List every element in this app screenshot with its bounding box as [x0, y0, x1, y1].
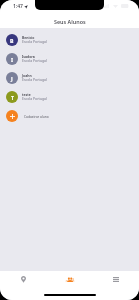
staticText: Joahn	[22, 73, 32, 78]
staticText: Escola Portugal	[22, 39, 47, 44]
staticText: T	[11, 94, 14, 101]
staticText: teste	[22, 92, 31, 97]
staticText: B	[10, 37, 14, 44]
button[interactable]: J	[0, 68, 139, 87]
staticText: J	[11, 75, 13, 82]
staticText: Escola Portugal	[22, 58, 47, 63]
button[interactable]: I	[0, 49, 139, 68]
button[interactable]: Alunos	[47, 271, 93, 288]
staticText: Isadora	[22, 54, 35, 59]
staticText: 1:47	[13, 3, 23, 10]
button[interactable]: Locais	[0, 271, 47, 288]
button[interactable]: B	[0, 30, 139, 49]
staticText: Seus Alunos	[54, 18, 86, 25]
staticText: I	[11, 56, 14, 63]
staticText: Benicio	[22, 35, 35, 40]
staticText: Cadastrar aluno	[24, 114, 49, 118]
button[interactable]: T	[0, 87, 139, 106]
staticText: Escola Portugal	[22, 96, 47, 101]
staticText: Escola Portugal	[22, 77, 47, 82]
button[interactable]: Cadastrar aluno	[0, 106, 139, 125]
button[interactable]: Menu	[93, 271, 139, 288]
